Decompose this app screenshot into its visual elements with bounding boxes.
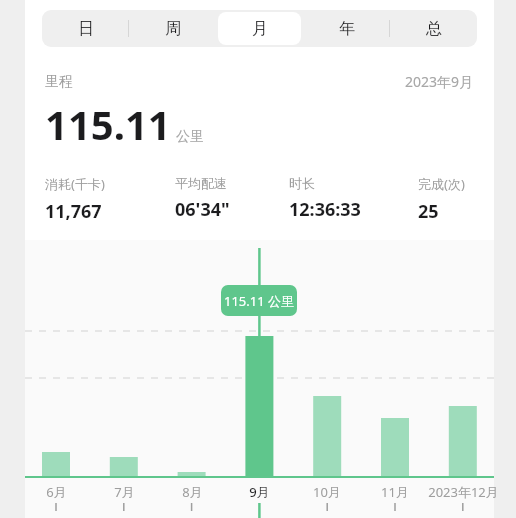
staticText: 7月 [114,483,135,501]
staticText: 公里 [176,128,204,146]
staticText: 总 [426,19,442,39]
staticText: 12:36:33 [289,197,361,222]
staticText: 2023年12月 [428,483,499,501]
staticText: 25 [418,199,439,224]
button[interactable]: 月 [218,12,301,45]
button[interactable]: 年 [305,12,388,45]
staticText: 平均配速 [175,175,227,191]
button[interactable]: 6月 [11,483,101,501]
staticText: 年 [339,19,355,39]
staticText: 完成(次) [418,175,465,193]
button[interactable]: 总 [392,12,475,45]
button[interactable]: 10月 [282,483,372,501]
button[interactable]: 7月 [79,483,169,501]
staticText: 时长 [289,175,315,191]
button[interactable]: 周 [131,12,214,45]
staticText: 消耗(千卡) [45,175,105,193]
button[interactable]: 11月 [350,483,440,501]
staticText: 8月 [182,483,203,501]
staticText: 9月 [249,483,270,501]
staticText: 115.11 [45,97,171,151]
staticText: 里程 [45,73,73,91]
button[interactable]: 115.11 公里 [221,285,297,316]
button[interactable]: 日 [44,12,127,45]
staticText: 115.11 公里 [224,292,295,310]
staticText: 2023年9月 [405,72,474,91]
button[interactable]: 9月 [214,483,304,501]
staticText: 10月 [313,483,341,501]
staticText: 11,767 [45,199,102,224]
staticText: 11月 [381,483,409,501]
button[interactable]: 8月 [147,483,237,501]
staticText: 6月 [46,483,67,501]
staticText: 日 [78,19,94,39]
staticText: 06'34" [175,197,230,222]
staticText: 周 [165,19,181,39]
button[interactable]: 2023年12月 [418,483,508,501]
staticText: 月 [252,19,268,39]
